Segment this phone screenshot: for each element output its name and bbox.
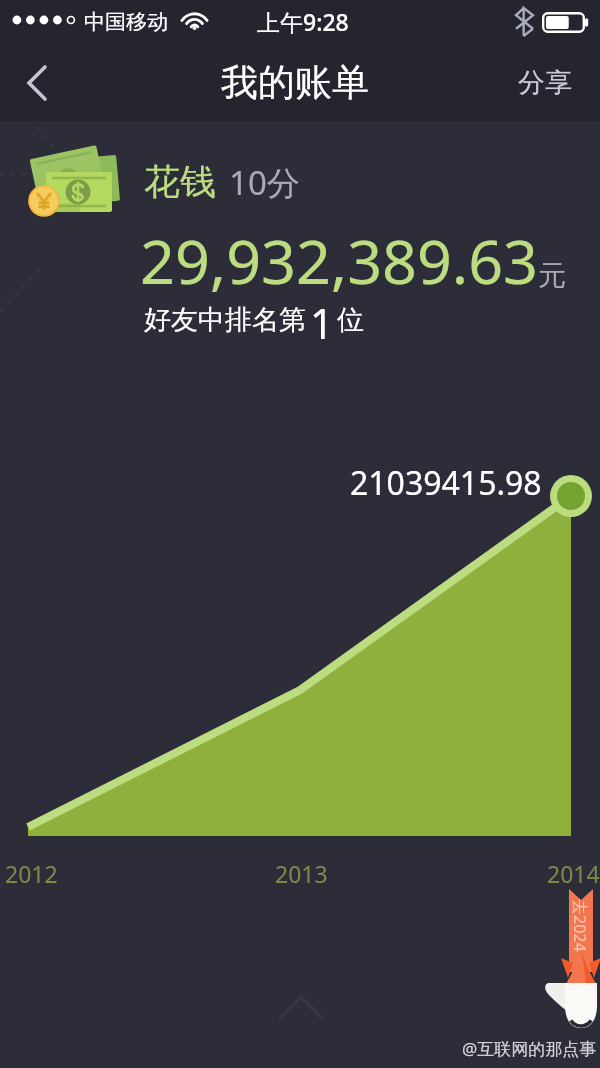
staticText: 1	[310, 295, 334, 351]
staticText: 上午9:28	[257, 6, 349, 37]
staticText: 29,932,389.63	[140, 219, 538, 302]
staticText: 我的账单	[221, 59, 369, 106]
staticText: 10分	[229, 160, 300, 205]
staticText: 2013	[275, 858, 328, 889]
staticText: 位	[337, 303, 364, 337]
staticText: 中国移动	[84, 9, 168, 35]
staticText: 2014	[547, 858, 600, 889]
staticText: 元	[538, 258, 566, 293]
button[interactable]: 向上	[278, 994, 324, 1024]
staticText: 分享	[518, 66, 572, 100]
staticText: 去2024	[569, 899, 591, 952]
button[interactable]: 返回	[6, 44, 68, 121]
staticText: 好友中排名第	[144, 303, 306, 337]
staticText: 花钱	[144, 159, 216, 204]
staticText: 21039415.98	[350, 461, 542, 505]
staticText: @互联网的那点事	[462, 1037, 597, 1060]
staticText: 2012	[5, 858, 58, 889]
button[interactable]: 分享	[518, 44, 572, 121]
